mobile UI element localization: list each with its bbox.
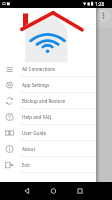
staticText: About <box>22 146 36 152</box>
staticText: Help and FAQ <box>22 114 52 120</box>
button[interactable]: Exit <box>0 157 96 173</box>
staticText: App Settings <box>22 82 50 88</box>
button[interactable]: App Settings <box>0 77 96 93</box>
button[interactable]: All Connections <box>0 61 96 77</box>
staticText: Backup and Restore <box>22 98 65 104</box>
staticText: Exit <box>22 162 30 168</box>
staticText: All Connections <box>22 66 56 72</box>
staticText: User Guide <box>22 130 47 136</box>
button[interactable]: Help and FAQ <box>0 109 96 125</box>
button[interactable]: Backup and Restore <box>0 93 96 109</box>
button[interactable]: User Guide <box>0 125 96 141</box>
button[interactable]: About <box>0 141 96 157</box>
button[interactable]: More options <box>97 9 110 22</box>
staticText: 1:28 <box>95 1 105 7</box>
